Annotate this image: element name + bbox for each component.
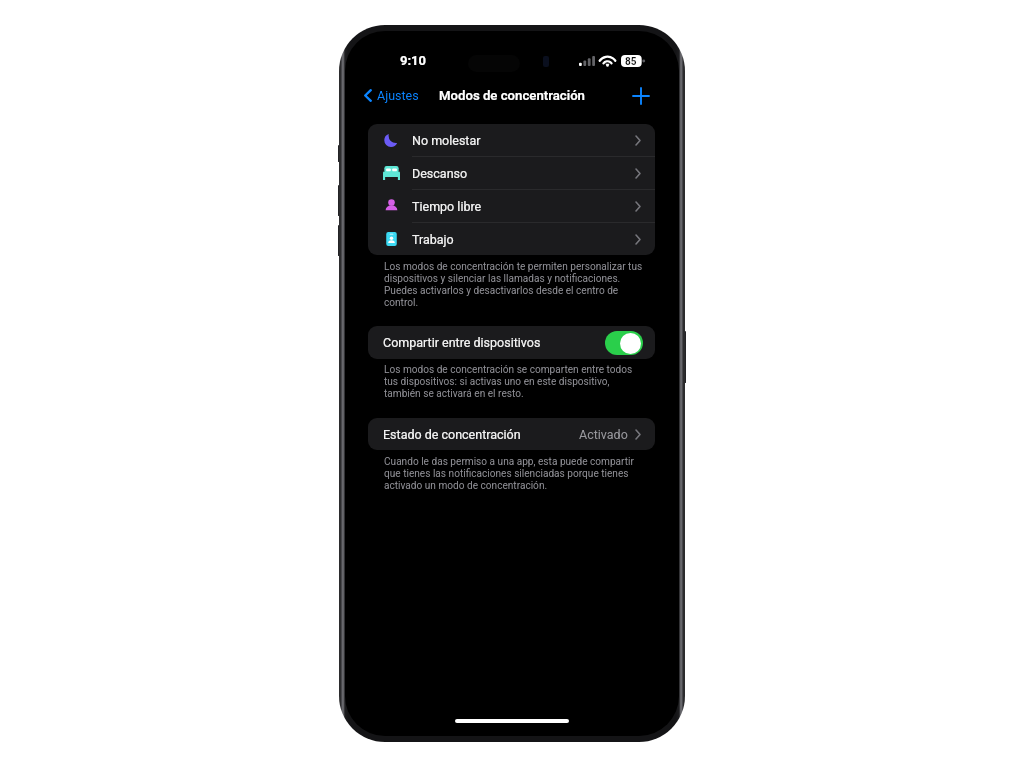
staticText: No molestar [412, 133, 481, 148]
button[interactable]: No molestar [368, 124, 655, 156]
button[interactable]: Compartir entre dispositivos [368, 326, 655, 359]
staticText: Modos de concentración [439, 88, 585, 103]
button[interactable]: Trabajo [368, 223, 655, 255]
button[interactable]: Ajustes [358, 82, 427, 108]
button[interactable]: Añadir modo de concentración [628, 83, 654, 109]
staticText: Cuando le das permiso a una app, esta pu… [384, 456, 664, 492]
staticText: Los modos de concentración te permiten p… [384, 261, 664, 309]
button[interactable]: Tiempo libre [368, 190, 655, 222]
button[interactable]: Descanso [368, 157, 655, 189]
staticText: 9:10 [400, 53, 427, 68]
staticText: Tiempo libre [412, 199, 482, 214]
staticText: Ajustes [377, 88, 419, 103]
staticText: 85 [625, 56, 637, 68]
button[interactable]: Estado de concentración [368, 418, 655, 450]
staticText: Estado de concentración [383, 427, 521, 442]
staticText: Trabajo [412, 232, 454, 247]
button[interactable]: Compartir entre dispositivos [605, 331, 643, 355]
staticText: Activado [579, 427, 628, 442]
staticText: Compartir entre dispositivos [383, 335, 541, 350]
staticText: Descanso [412, 166, 468, 181]
staticText: Los modos de concentración se comparten … [384, 364, 664, 400]
